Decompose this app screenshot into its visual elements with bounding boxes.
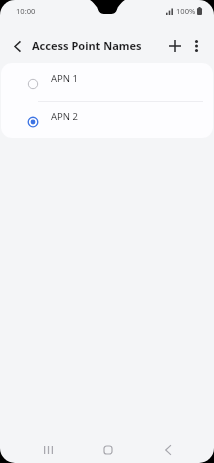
button[interactable]: APN 1 <box>1 63 213 101</box>
button[interactable]: Home <box>90 432 126 463</box>
button[interactable]: Add <box>162 33 188 59</box>
staticText: APN 1 <box>51 72 78 85</box>
button[interactable]: More options <box>183 33 209 59</box>
button[interactable]: Recents <box>30 432 66 463</box>
staticText: APN 2 <box>51 110 78 123</box>
staticText: Access Point Names <box>32 38 142 53</box>
button[interactable]: APN 2 <box>1 102 213 138</box>
staticText: 100% <box>176 6 196 16</box>
button[interactable]: Back <box>150 432 186 463</box>
staticText: 10:00 <box>16 6 36 16</box>
button[interactable]: Back <box>4 33 30 59</box>
